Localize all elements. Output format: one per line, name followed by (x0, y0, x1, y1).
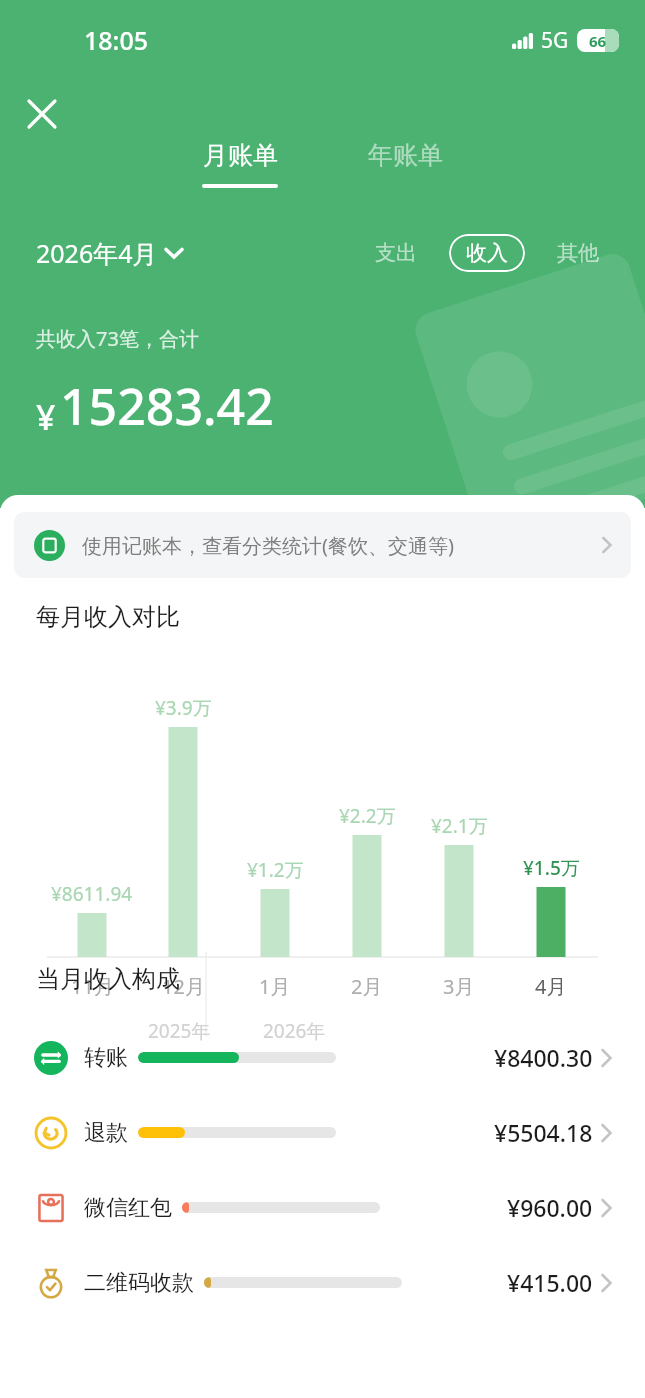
button[interactable]: 收入 (449, 234, 525, 272)
button[interactable]: 2026年4月 (36, 236, 182, 270)
staticText: 当月收入构成 (36, 964, 180, 994)
button[interactable]: 使用记账本，查看分类统计(餐饮、交通等) (14, 512, 631, 578)
button[interactable]: 退款 (0, 1095, 645, 1170)
staticText: 4月 (535, 973, 567, 1000)
staticText: 15283.42 (60, 372, 274, 440)
staticText: 12月 (162, 973, 205, 1000)
staticText: 2月 (351, 973, 383, 1000)
staticText: 1月 (259, 973, 291, 1000)
staticText: 5G (541, 26, 569, 55)
staticText: 使用记账本，查看分类统计(餐饮、交通等) (82, 532, 454, 559)
staticText: 月账单 (203, 140, 278, 171)
button[interactable]: 支出 (365, 234, 427, 272)
staticText: 收入 (466, 240, 508, 266)
staticText: ¥8400.30 (494, 1042, 593, 1073)
staticText: 11月 (71, 973, 114, 1000)
staticText: 每月收入对比 (36, 602, 180, 632)
staticText: ¥ (36, 394, 56, 440)
staticText: 2026年4月 (36, 236, 158, 270)
button[interactable]: 其他 (547, 234, 609, 272)
staticText: 微信红包 (84, 1194, 172, 1222)
staticText: ¥1.5万 (523, 855, 580, 881)
button[interactable]: 转账 (0, 1020, 645, 1095)
staticText: 3月 (443, 973, 475, 1000)
staticText: 66 (589, 31, 607, 51)
button[interactable]: 二维码收款 (0, 1245, 645, 1320)
staticText: ¥2.1万 (431, 813, 488, 839)
staticText: ¥3.9万 (155, 695, 212, 721)
staticText: 2026年 (263, 1018, 326, 1044)
staticText: ¥960.00 (507, 1192, 593, 1223)
staticText: ¥5504.18 (494, 1117, 593, 1148)
button[interactable]: 月账单 (196, 140, 284, 188)
button[interactable]: 年账单 (362, 140, 449, 171)
staticText: ¥415.00 (507, 1267, 593, 1298)
staticText: 2025年 (148, 1018, 211, 1044)
staticText: 共收入73笔，合计 (36, 325, 199, 352)
staticText: 二维码收款 (84, 1269, 194, 1297)
staticText: 18:05 (84, 23, 149, 57)
staticText: 转账 (84, 1044, 128, 1072)
button[interactable]: 微信红包 (0, 1170, 645, 1245)
staticText: ¥1.2万 (247, 857, 304, 883)
staticText: 退款 (84, 1119, 128, 1147)
staticText: 年账单 (368, 140, 443, 171)
staticText: ¥2.2万 (339, 803, 396, 829)
staticText: ¥8611.94 (51, 881, 133, 907)
button[interactable]: Close (16, 88, 68, 140)
